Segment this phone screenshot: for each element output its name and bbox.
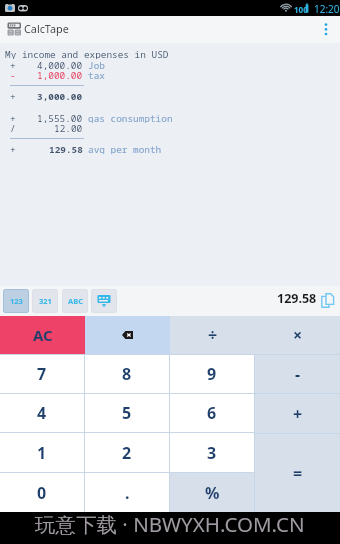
button[interactable]: Hide keyboard — [91, 289, 117, 313]
staticText: 4,000.00 — [37, 59, 83, 70]
button[interactable]: 2 — [85, 433, 169, 472]
button[interactable]: 321 — [32, 289, 58, 313]
staticText: - — [10, 69, 16, 80]
staticText: 4 — [37, 402, 47, 424]
staticText: 7 — [37, 363, 47, 385]
staticText: 123 — [10, 296, 23, 306]
staticText: 1,000.00 — [37, 69, 83, 80]
staticText: gas consumption — [88, 112, 173, 123]
staticText: avg per month — [88, 143, 162, 154]
button[interactable]: 8 — [85, 355, 169, 393]
staticText: 2 — [122, 442, 132, 464]
button[interactable]: + — [255, 394, 340, 433]
button[interactable]: 123 — [3, 289, 29, 313]
staticText: 1 — [37, 442, 47, 464]
button[interactable]: 0 — [0, 473, 84, 512]
button[interactable]: Backspace — [85, 316, 170, 354]
staticText: + — [10, 143, 16, 154]
button[interactable]: × — [255, 316, 340, 354]
staticText: 5 — [122, 402, 132, 424]
staticText: 0 — [37, 482, 47, 504]
button[interactable]: = — [255, 434, 340, 512]
staticText: = — [293, 462, 303, 484]
button[interactable]: ABC — [62, 289, 88, 313]
staticText: ABC — [68, 296, 83, 306]
button[interactable]: Copy result — [319, 292, 337, 309]
staticText: 3 — [207, 442, 217, 464]
staticText: 321 — [39, 296, 52, 306]
staticText: tax — [88, 69, 105, 80]
staticText: / — [10, 122, 16, 133]
staticText: Job — [88, 59, 105, 70]
button[interactable]: - — [255, 355, 340, 393]
button[interactable]: ÷ — [170, 316, 255, 354]
staticText: 100 — [294, 4, 308, 15]
button[interactable]: % — [170, 473, 254, 512]
button[interactable]: 5 — [85, 394, 169, 432]
staticText: + — [293, 403, 303, 425]
button[interactable]: 3 — [170, 433, 254, 472]
staticText: CalcTape — [24, 21, 69, 36]
staticText: AC — [33, 325, 53, 345]
button[interactable]: . — [85, 473, 169, 512]
staticText: ÷ — [208, 324, 218, 346]
staticText: 玩意下载 · NBWYXH.COM.CN — [35, 510, 305, 538]
staticText: 12.00 — [54, 122, 83, 133]
staticText: 1,555.00 — [37, 112, 83, 123]
staticText: + — [10, 112, 16, 123]
staticText: 129.58 — [49, 143, 83, 154]
staticText: × — [293, 324, 303, 346]
staticText: 8 — [122, 363, 132, 385]
button[interactable]: More options — [314, 16, 340, 43]
staticText: 3,000.00 — [37, 90, 83, 101]
staticText: 12:20 — [314, 2, 340, 16]
staticText: + — [10, 90, 16, 101]
button[interactable]: 7 — [0, 355, 84, 393]
button[interactable]: 6 — [170, 394, 254, 432]
staticText: 9 — [207, 363, 217, 385]
staticText: 129.58 — [277, 290, 317, 307]
button[interactable]: 1 — [0, 433, 84, 472]
staticText: . — [125, 482, 130, 504]
staticText: - — [295, 363, 301, 385]
button[interactable]: 4 — [0, 394, 84, 432]
button[interactable]: AC — [0, 316, 85, 354]
button[interactable]: 9 — [170, 355, 254, 393]
staticText: % — [205, 482, 220, 504]
staticText: My income and expenses in USD — [5, 48, 169, 59]
staticText: + — [10, 59, 16, 70]
staticText: 6 — [207, 402, 217, 424]
